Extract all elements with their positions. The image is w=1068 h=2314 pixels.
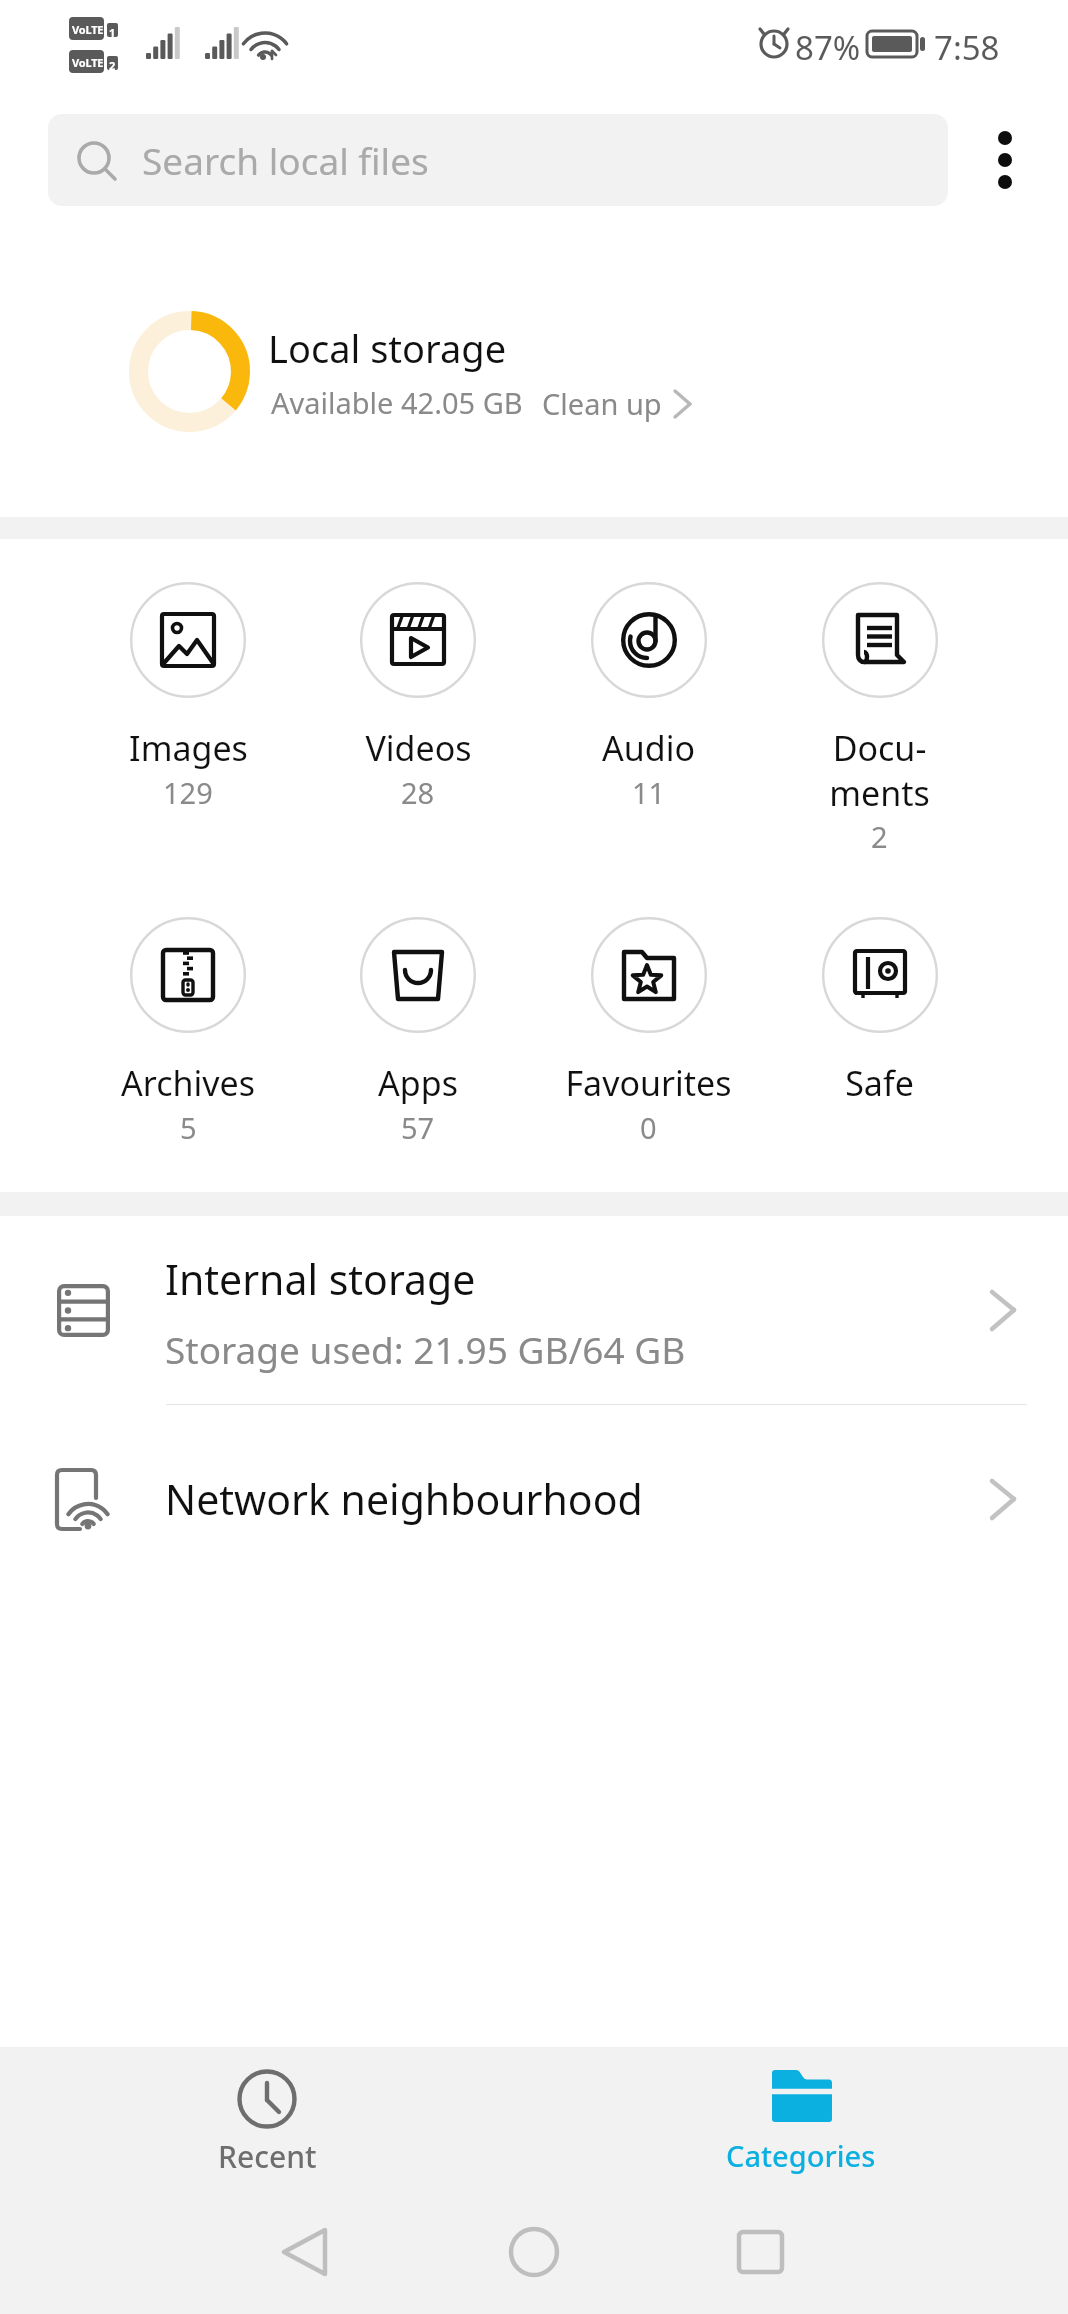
- staticText: 5: [180, 1108, 197, 1147]
- staticText: Local storage: [268, 322, 507, 374]
- button[interactable]: Home: [494, 2212, 574, 2292]
- staticText: 11: [632, 773, 666, 812]
- staticText: VoLTE: [72, 55, 104, 70]
- staticText: 87%: [795, 25, 861, 70]
- button[interactable]: Images: [73, 582, 303, 812]
- staticText: Favourites: [565, 1060, 732, 1106]
- staticText: Clean up: [542, 384, 662, 423]
- staticText: Archives: [121, 1060, 255, 1106]
- staticText: 2: [109, 58, 116, 73]
- staticText: 28: [401, 773, 435, 812]
- staticText: Internal storage: [165, 1251, 476, 1307]
- button[interactable]: Recent apps: [720, 2212, 800, 2292]
- staticText: 57: [401, 1108, 435, 1147]
- button[interactable]: Archives: [73, 917, 303, 1147]
- staticText: 7:58: [934, 25, 1000, 70]
- staticText: Search local files: [142, 135, 429, 185]
- staticText: 1: [109, 25, 116, 40]
- staticText: 2: [871, 817, 888, 856]
- button[interactable]: Recent: [187, 2055, 347, 2195]
- staticText: VoLTE: [72, 22, 104, 37]
- staticText: Recent: [218, 2136, 317, 2177]
- button[interactable]: Categories: [721, 2055, 881, 2195]
- staticText: Categories: [726, 2136, 876, 2175]
- button[interactable]: Clean up: [542, 380, 699, 426]
- staticText: Videos: [365, 725, 472, 771]
- button[interactable]: Back: [264, 2212, 344, 2292]
- staticText: 129: [163, 773, 213, 812]
- button[interactable]: Network neighbourhood: [0, 1405, 1068, 1595]
- staticText: Docu- ments: [829, 725, 930, 815]
- button[interactable]: More options: [963, 118, 1047, 202]
- button[interactable]: Apps: [303, 917, 533, 1147]
- staticText: Apps: [378, 1060, 458, 1106]
- staticText: Available 42.05 GB: [271, 383, 523, 422]
- button[interactable]: Safe: [764, 917, 995, 1106]
- button[interactable]: Search local files: [48, 114, 948, 206]
- button[interactable]: Local storage: [0, 260, 1068, 482]
- button[interactable]: Internal storage: [0, 1216, 1068, 1404]
- button[interactable]: Audio: [533, 582, 764, 812]
- button[interactable]: Docu- ments: [764, 582, 995, 856]
- staticText: Images: [129, 725, 248, 771]
- staticText: Safe: [845, 1060, 914, 1106]
- staticText: Storage used: 21.95 GB/64 GB: [165, 1324, 686, 1374]
- button[interactable]: Favourites: [533, 917, 764, 1147]
- staticText: 0: [640, 1108, 657, 1147]
- staticText: Network neighbourhood: [165, 1471, 643, 1527]
- button[interactable]: Videos: [303, 582, 533, 812]
- staticText: Audio: [602, 725, 695, 771]
